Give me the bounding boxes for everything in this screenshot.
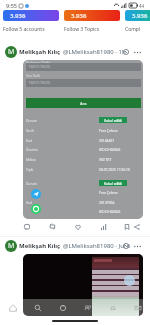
staticText: Follow 5 accounts [3,26,45,33]
button[interactable]: Repost [47,221,58,232]
staticText: Son Tarih [26,73,41,77]
button[interactable]: Reply [21,221,32,232]
staticText: 08.07.2025 17:36:18 [99,167,130,171]
button[interactable]: 3.936 [64,10,120,33]
staticText: Başlangıç Tarihi [26,60,51,64]
staticText: Follow 3 Topics [64,26,100,33]
button[interactable]: More [132,47,143,58]
button[interactable]: Ara [26,98,141,108]
button[interactable]: Views [98,221,109,232]
staticText: IKOLI HAVALE [99,209,121,213]
button[interactable]: Communities [75,299,100,316]
button[interactable]: 3.936 [125,10,150,33]
button[interactable]: Share [131,221,142,232]
staticText: M [8,47,15,57]
staticText: Üzerine [26,147,38,151]
staticText: 2013792A [99,200,115,204]
staticText: 18/07/2025 [28,80,51,86]
button[interactable]: Messages [125,299,150,316]
staticText: Tarih [26,128,34,132]
staticText: M [8,241,15,251]
staticText: Durum [26,118,37,122]
button[interactable]: Grok actions [121,47,130,56]
staticText: Durum [26,181,37,185]
staticText: 9:55 [6,2,17,9]
staticText: @LMeliksah81980 · 1h [63,48,126,56]
staticText: Miktar [26,157,37,161]
staticText: Tipik [26,167,34,171]
button[interactable]: Profile [5,240,17,252]
staticText: 3.936 [10,12,26,20]
button[interactable]: Bookmark [121,221,132,232]
button[interactable]: Profile [5,46,17,58]
button[interactable]: Home [0,299,25,316]
button[interactable]: Notifications [100,299,125,316]
staticText: 2014A821 [99,138,115,142]
staticText: Kabul edildi [104,118,123,122]
staticText: 3.936 [71,12,87,20]
staticText: Para Çekme [99,128,118,132]
staticText: @LMeliksah81980 · Jul 6 [63,242,131,250]
staticText: IKOLI HAVALE [99,147,121,151]
staticText: Kod [26,200,33,204]
staticText: Melikşah Kılıç [19,48,61,56]
staticText: Ara [80,101,87,106]
staticText: Para Çekme [99,190,118,194]
button[interactable]: More [132,241,143,252]
button[interactable]: Search [25,299,50,316]
staticText: 18/07/2025 [28,64,51,70]
staticText: 3.936 [132,12,148,20]
staticText: 900 TRY [99,157,112,161]
staticText: 44 [139,3,145,9]
button[interactable]: 3.936 [3,10,59,33]
staticText: Compl [125,26,141,33]
staticText: Kod [26,138,33,142]
button[interactable]: Grok actions [121,241,130,250]
button[interactable]: Like [72,221,83,232]
button[interactable]: Grok [50,299,75,316]
staticText: Kabul edildi [104,181,123,185]
staticText: Melikşah Kılıç [19,242,61,250]
